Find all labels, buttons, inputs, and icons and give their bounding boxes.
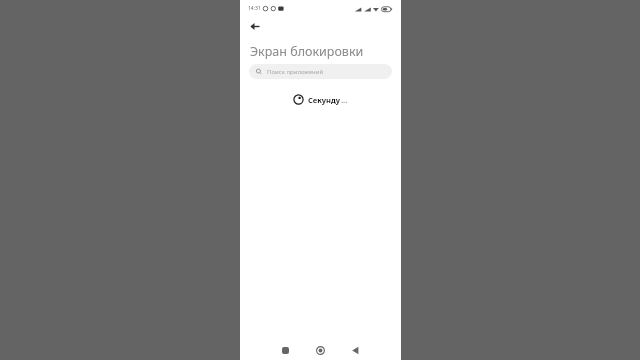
button[interactable]: [316, 346, 325, 355]
staticText: 14:31: [248, 5, 261, 12]
staticText: Экран блокировки: [250, 43, 364, 60]
staticText: ...: [341, 95, 348, 105]
staticText: Поиск приложений: [267, 68, 324, 76]
button[interactable]: [247, 19, 263, 35]
button[interactable]: Поиск приложений: [249, 64, 392, 79]
staticText: Секунду: [308, 95, 341, 105]
button[interactable]: [282, 347, 289, 354]
button[interactable]: [351, 346, 360, 355]
